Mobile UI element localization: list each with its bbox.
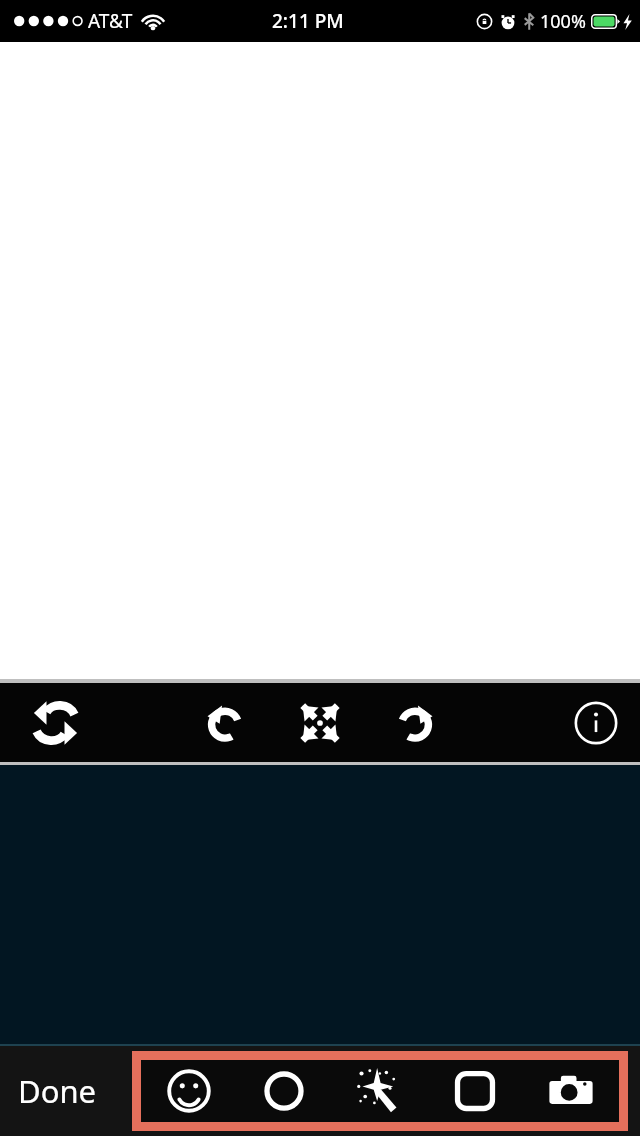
staticText: 100% xyxy=(540,9,586,34)
button[interactable]: Camera xyxy=(523,1060,619,1122)
button[interactable]: Rotate right xyxy=(384,692,446,754)
button[interactable]: Move xyxy=(288,691,352,755)
staticText: 2:11 PM xyxy=(272,8,344,34)
button[interactable]: Frames xyxy=(427,1060,523,1122)
button[interactable]: Effects xyxy=(331,1060,427,1122)
staticText: Done xyxy=(18,1070,97,1112)
button[interactable]: Info xyxy=(564,691,628,755)
button[interactable]: Done xyxy=(18,1070,97,1112)
button[interactable]: Stickers xyxy=(141,1060,236,1122)
button[interactable]: Rotate left xyxy=(194,692,256,754)
button[interactable]: Draw xyxy=(236,1060,331,1122)
button[interactable]: Flip xyxy=(24,692,86,754)
staticText: AT&T xyxy=(88,8,133,34)
